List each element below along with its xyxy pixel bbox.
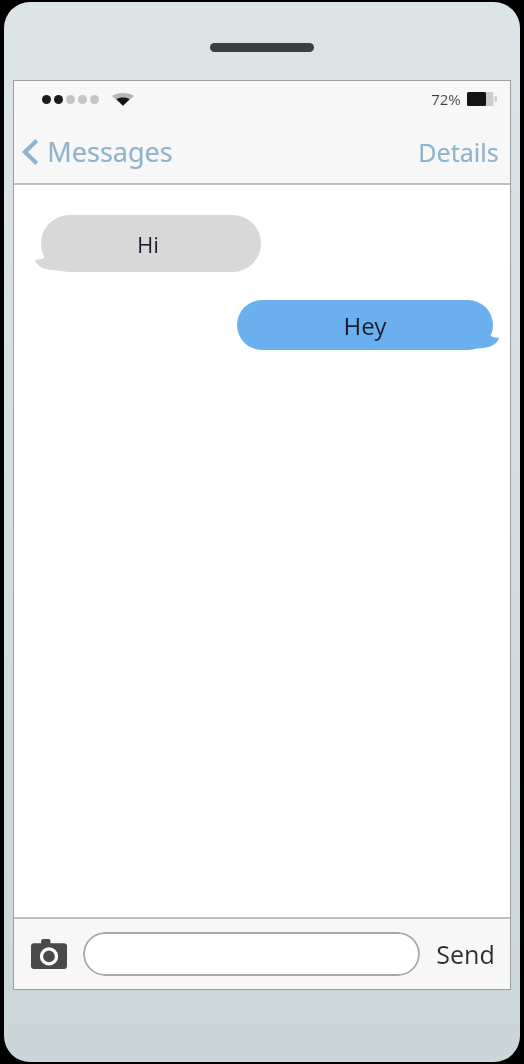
button[interactable]: Camera xyxy=(27,935,71,973)
button[interactable]: Details xyxy=(406,127,511,177)
staticText: Send xyxy=(436,937,495,971)
button[interactable]: Hey xyxy=(237,300,499,350)
button[interactable]: Message input xyxy=(83,932,420,976)
staticText: Messages xyxy=(47,133,173,170)
button[interactable]: Send xyxy=(430,929,501,979)
staticText: Hey xyxy=(343,309,387,342)
button[interactable]: Messages xyxy=(13,127,183,176)
staticText: Hi xyxy=(137,229,159,259)
staticText: 72% xyxy=(431,89,461,109)
button[interactable]: Hi xyxy=(35,215,261,272)
staticText: Details xyxy=(418,135,499,169)
